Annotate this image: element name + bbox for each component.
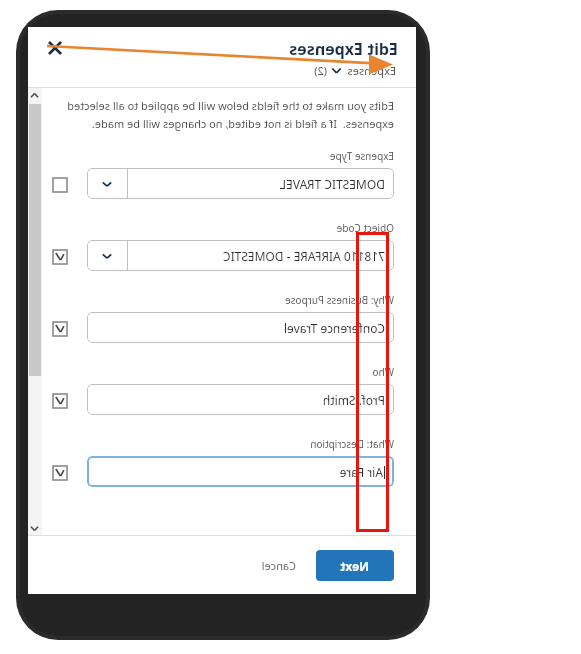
staticText: DOMESTIC TRAVEL bbox=[279, 176, 385, 192]
button[interactable]: Apply Why: Business Purpose bbox=[46, 315, 74, 343]
staticText: Conference Travel bbox=[283, 320, 385, 336]
button[interactable]: Apply Expense Type bbox=[46, 171, 74, 199]
button[interactable]: Prof. Smith bbox=[87, 384, 394, 415]
staticText: Who bbox=[372, 365, 394, 379]
button[interactable]: Apply Who bbox=[46, 387, 74, 415]
staticText: on bbox=[179, 120, 198, 140]
staticText: Th bbox=[180, 395, 198, 415]
staticText: Air Fare bbox=[339, 464, 383, 480]
staticText: expenses. If a field is not edited, no c… bbox=[91, 116, 394, 131]
button[interactable]: Cancel bbox=[255, 552, 302, 579]
staticText: Object Code bbox=[336, 221, 394, 235]
button[interactable]: Scroll up bbox=[28, 88, 42, 102]
staticText: Expenses bbox=[347, 63, 396, 78]
button[interactable]: Conference Travel bbox=[87, 312, 394, 343]
staticText: ch bbox=[181, 475, 198, 495]
staticText: Expense Type bbox=[329, 149, 394, 163]
button[interactable]: DOMESTIC TRAVEL bbox=[87, 168, 394, 199]
button[interactable]: Expenses bbox=[312, 61, 398, 80]
staticText: What: Description bbox=[310, 437, 394, 451]
button[interactable]: Close bbox=[42, 35, 68, 61]
button[interactable]: Apply Object Code bbox=[46, 243, 74, 271]
button[interactable]: Apply What: Description bbox=[46, 459, 74, 487]
button[interactable]: Scroll down bbox=[28, 521, 42, 535]
staticText: m bbox=[183, 455, 198, 475]
staticText: (2) bbox=[314, 63, 327, 78]
staticText: Prof. Smith bbox=[322, 392, 385, 408]
staticText: se bbox=[182, 100, 198, 120]
staticText: 718110 AIRFARE - DOMESTIC bbox=[222, 248, 385, 264]
button[interactable]: 718110 AIRFARE - DOMESTIC bbox=[87, 240, 394, 271]
button[interactable]: Open Object Code list bbox=[87, 241, 127, 270]
staticText: ex bbox=[181, 80, 198, 100]
button[interactable]: Next bbox=[316, 550, 394, 581]
button[interactable]: Air Fare bbox=[87, 456, 394, 487]
staticText: Next bbox=[340, 558, 369, 574]
staticText: Edit Expenses bbox=[289, 38, 398, 60]
staticText: In bbox=[183, 40, 198, 60]
button[interactable]: Open Expense Type list bbox=[87, 169, 127, 198]
staticText: Edits you make to the fields below will … bbox=[67, 98, 394, 113]
staticText: Why: Business Purpose bbox=[285, 293, 394, 307]
staticText: Cancel bbox=[261, 558, 296, 573]
